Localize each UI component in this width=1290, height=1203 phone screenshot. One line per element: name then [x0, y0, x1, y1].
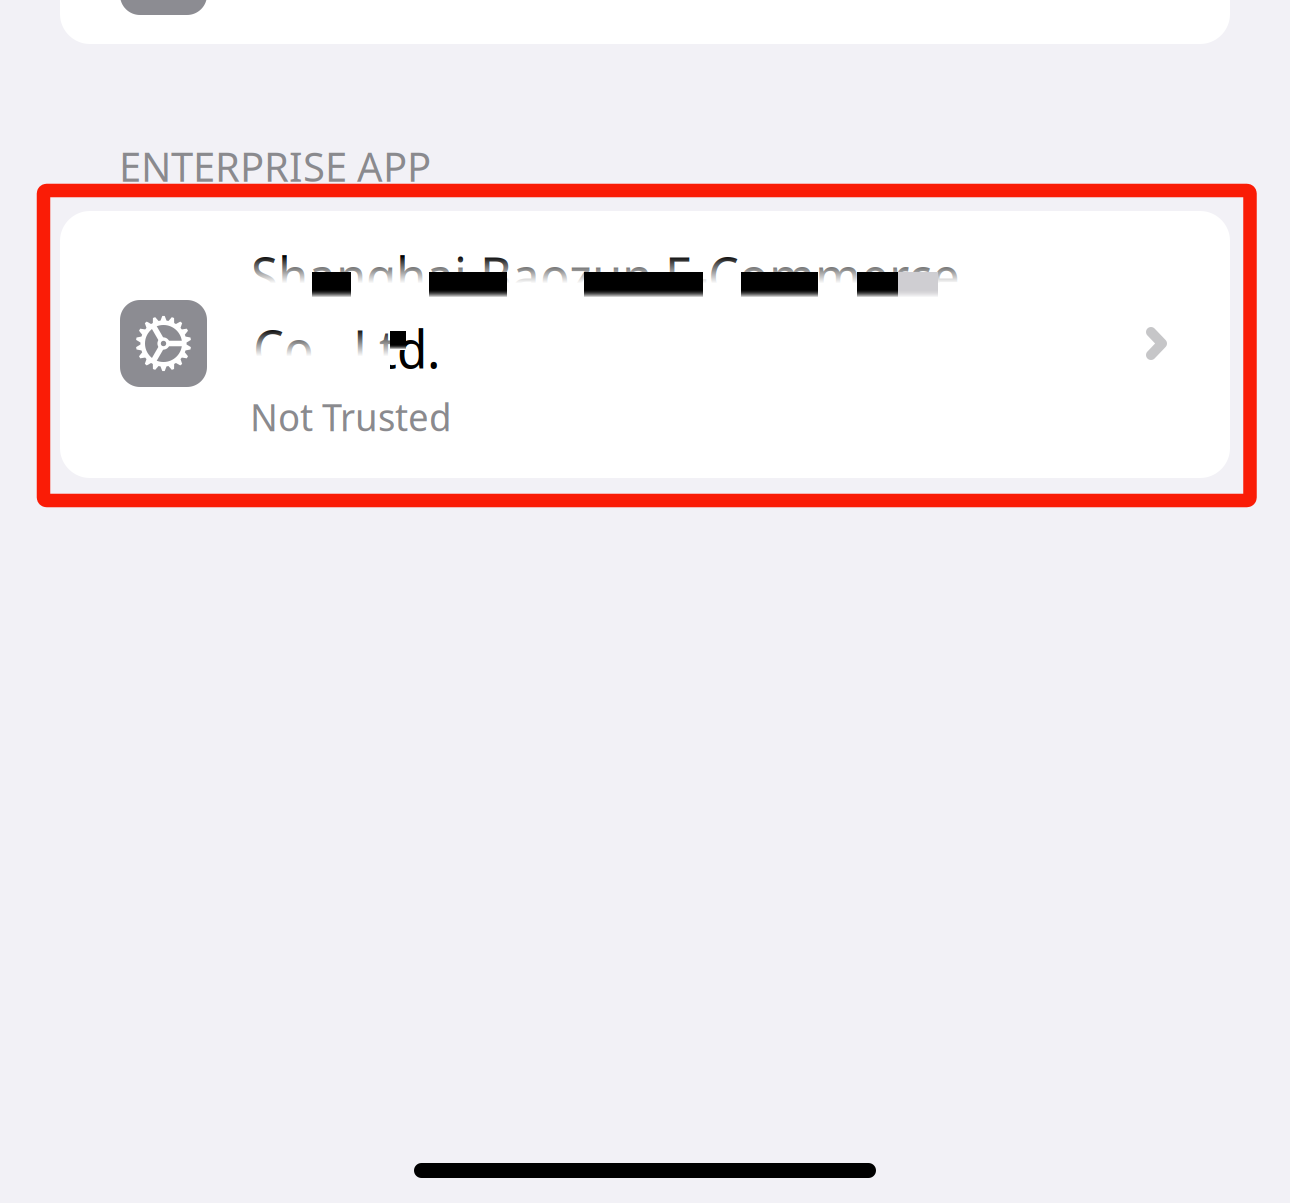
staticText: ENTERPRISE APP	[119, 139, 431, 193]
button[interactable]: Configuration profile	[60, 0, 1230, 44]
staticText: Co., Ltd.	[253, 313, 440, 384]
staticText: Not Trusted	[250, 390, 452, 443]
button[interactable]: Shanghai Baozun E-Commerce Co., Ltd. — N…	[60, 211, 1230, 478]
staticText: Shanghai Baozun E-Commerce	[251, 240, 960, 311]
